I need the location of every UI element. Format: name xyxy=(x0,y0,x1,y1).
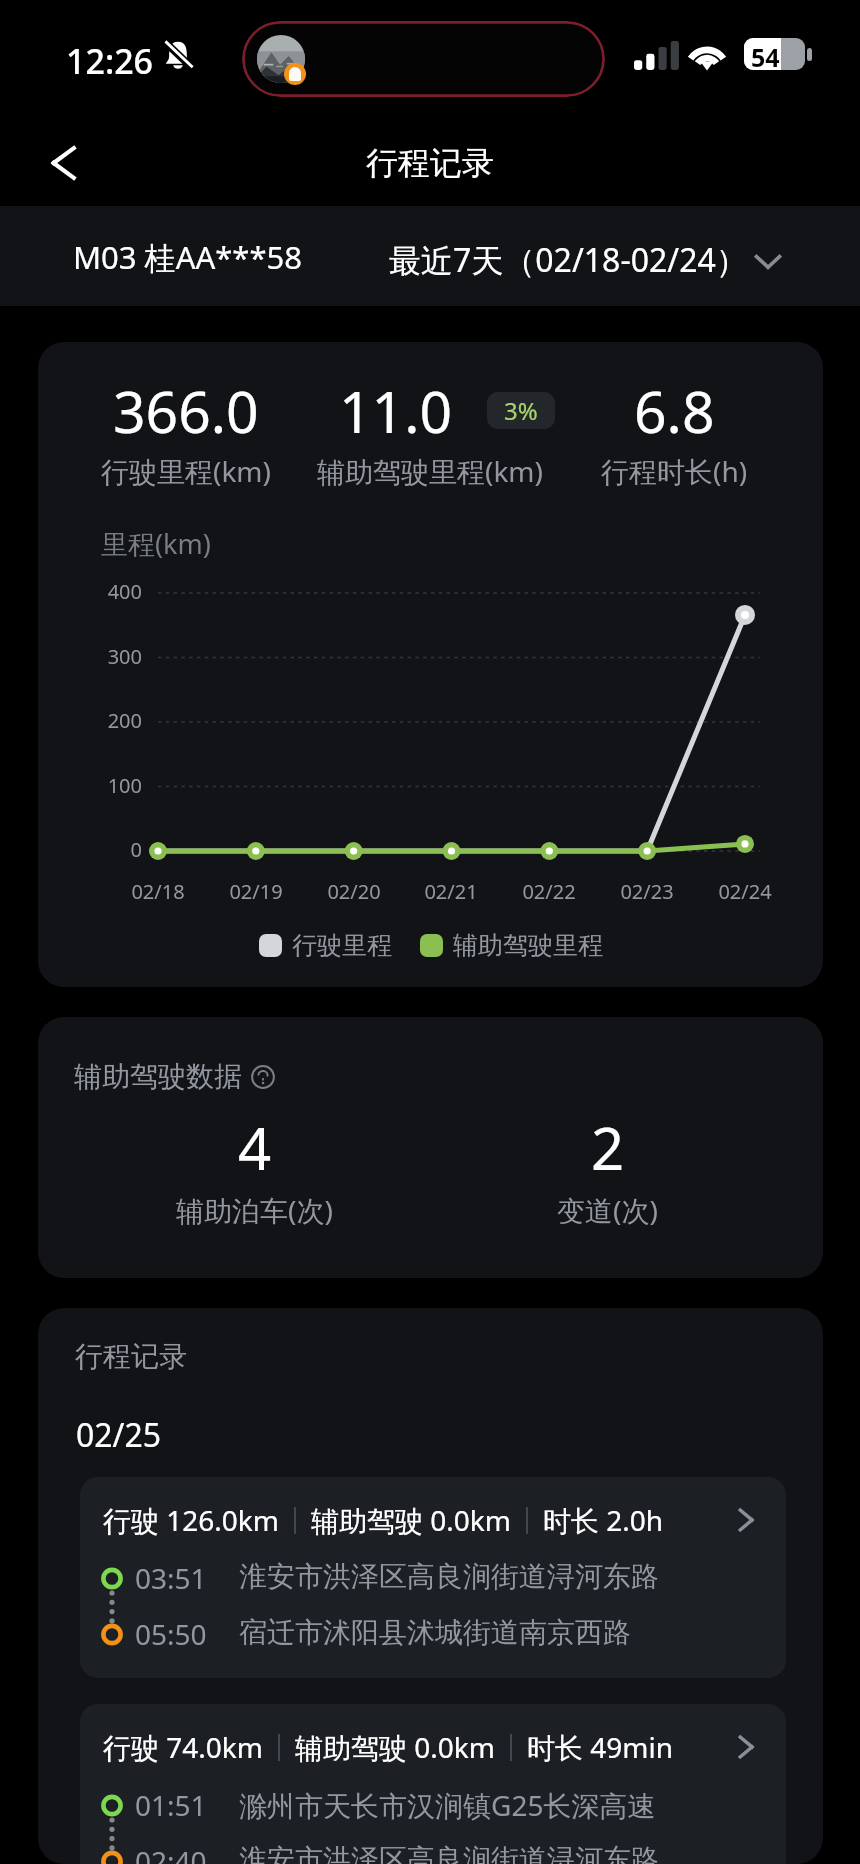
staticText: 行驶里程 xyxy=(292,930,392,961)
staticText: 200 xyxy=(38,707,142,734)
other: Open trip details xyxy=(730,1731,762,1763)
staticText: 02/19 xyxy=(208,878,304,905)
staticText: 时长 49min xyxy=(527,1728,674,1766)
staticText: 0 xyxy=(38,836,142,863)
staticText: M03 桂AA***58 xyxy=(73,236,302,278)
button[interactable]: 最近7天（02/18-02/24） xyxy=(375,206,784,306)
staticText: 变道(次) xyxy=(557,1191,658,1229)
staticText: 时长 2.0h xyxy=(543,1501,664,1539)
staticText: 02/21 xyxy=(403,878,499,905)
staticText: 最近7天（02/18-02/24） xyxy=(389,238,748,282)
button[interactable]: M03 桂AA***58 xyxy=(60,206,320,306)
staticText: 366.0 xyxy=(113,372,259,450)
staticText: 02:40 xyxy=(135,1842,207,1864)
button[interactable]: 辅助驾驶数据 xyxy=(62,1047,287,1106)
staticText: 54 xyxy=(751,40,780,70)
staticText: 淮安市洪泽区高良涧街道浔河东路 xyxy=(239,1559,659,1594)
staticText: 300 xyxy=(38,643,142,670)
staticText: 行程记录 xyxy=(75,1339,187,1374)
staticText: 2 xyxy=(591,1108,625,1187)
staticText: 4 xyxy=(238,1108,272,1187)
staticText: 辅助驾驶里程 xyxy=(453,930,603,961)
staticText: 01:51 xyxy=(135,1786,207,1824)
staticText: 02/25 xyxy=(76,1413,162,1457)
staticText: 行驶 74.0km xyxy=(103,1728,263,1766)
staticText: 11.0 xyxy=(339,372,453,450)
staticText: 辅助驾驶里程(km) xyxy=(317,452,543,490)
staticText: 400 xyxy=(38,578,142,605)
button[interactable]: Back xyxy=(40,134,98,192)
staticText: 02/24 xyxy=(697,878,793,905)
staticText: 宿迁市沭阳县沭城街道南京西路 xyxy=(239,1615,631,1650)
staticText: 里程(km) xyxy=(101,525,211,562)
button[interactable]: 行驶 74.0km xyxy=(80,1704,786,1864)
staticText: 05:50 xyxy=(135,1615,207,1653)
other: Help xyxy=(251,1065,275,1089)
staticText: 12:26 xyxy=(66,38,154,84)
staticText: 辅助泊车(次) xyxy=(176,1191,333,1229)
staticText: 02/20 xyxy=(306,878,402,905)
button[interactable]: 行驶 126.0km xyxy=(80,1477,786,1678)
other: Open trip details xyxy=(730,1504,762,1536)
staticText: 辅助驾驶数据 xyxy=(74,1059,242,1094)
staticText: 行驶里程(km) xyxy=(101,452,271,490)
staticText: 02/22 xyxy=(501,878,597,905)
staticText: 辅助驾驶 0.0km xyxy=(295,1728,495,1766)
staticText: 滁州市天长市汉涧镇G25长深高速 xyxy=(239,1786,656,1824)
staticText: 淮安市洪泽区高良涧街道浔河东路 xyxy=(239,1842,659,1864)
staticText: 行程记录 xyxy=(366,143,494,183)
staticText: 行驶 126.0km xyxy=(103,1501,279,1539)
staticText: 辅助驾驶 0.0km xyxy=(311,1501,511,1539)
staticText: 6.8 xyxy=(634,372,715,450)
staticText: 100 xyxy=(38,772,142,799)
staticText: 02/23 xyxy=(599,878,695,905)
staticText: 3% xyxy=(504,394,538,427)
other: Change date range xyxy=(752,249,784,275)
staticText: 行程时长(h) xyxy=(601,452,748,490)
staticText: 02/18 xyxy=(110,878,206,905)
staticText: 03:51 xyxy=(135,1559,207,1597)
